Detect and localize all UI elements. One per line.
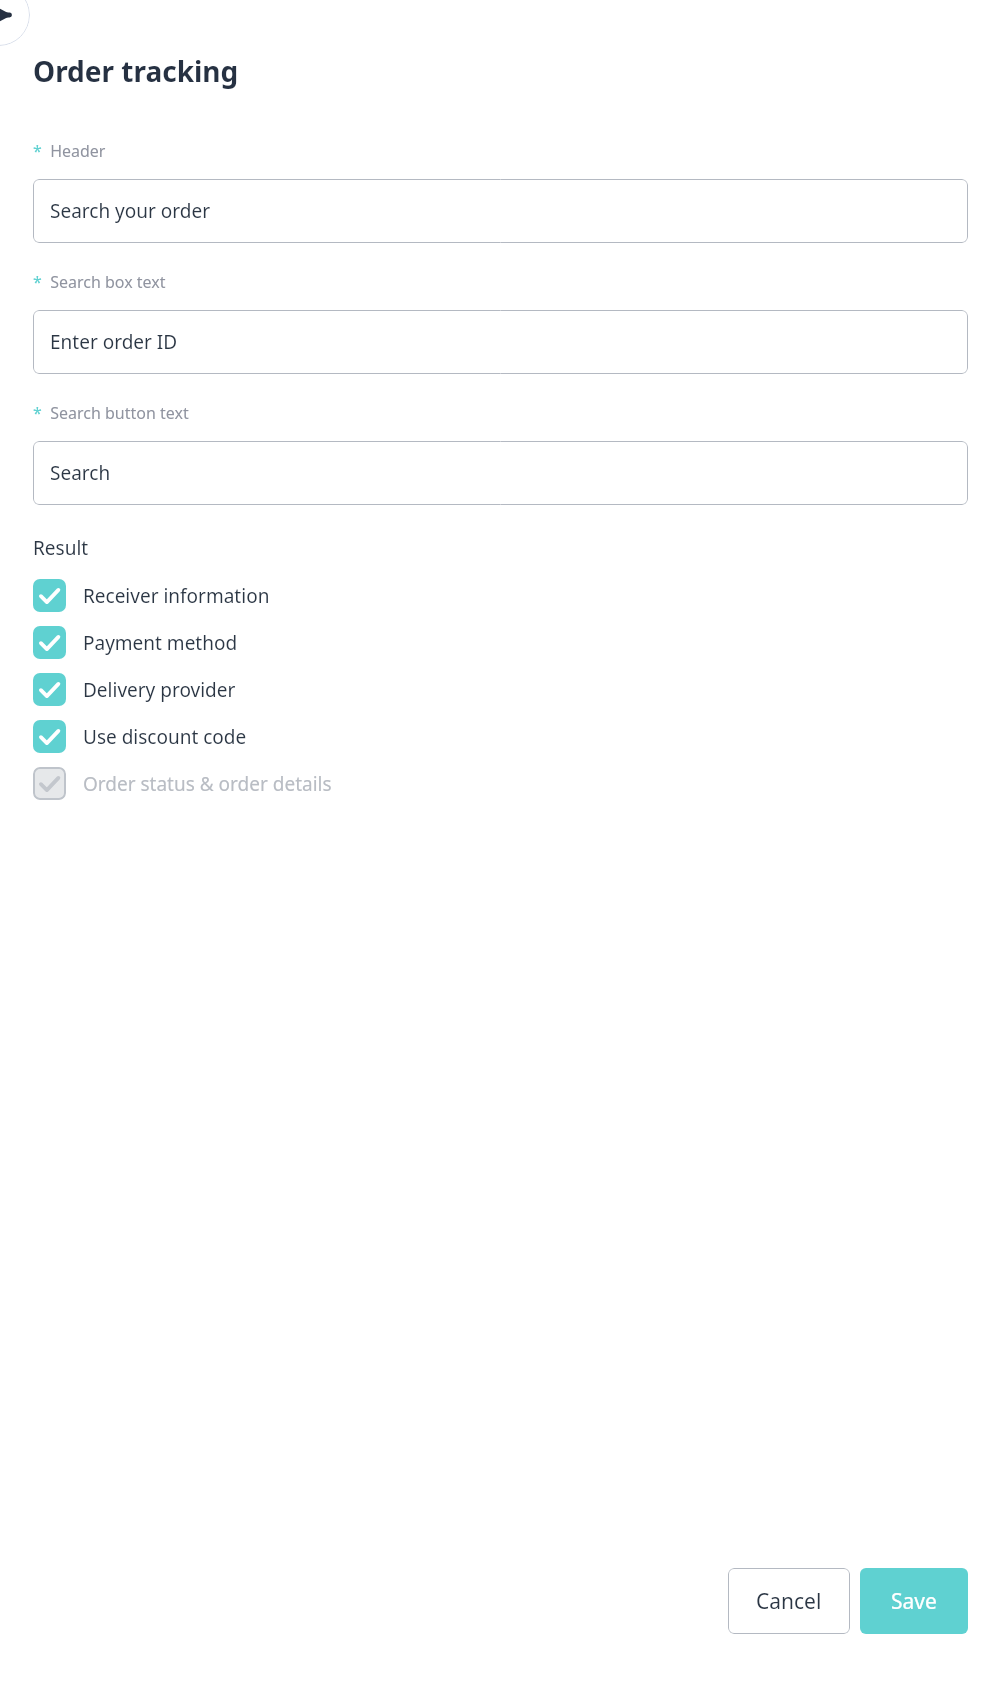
staticText: Save bbox=[891, 1587, 937, 1616]
staticText: Use discount code bbox=[83, 724, 247, 750]
button[interactable]: Expand bbox=[0, 0, 30, 46]
button[interactable]: Save bbox=[860, 1568, 968, 1634]
staticText: * Header bbox=[33, 140, 106, 162]
staticText: Receiver information bbox=[83, 583, 270, 609]
button: Order status & order details bbox=[33, 760, 968, 807]
staticText: Search bbox=[50, 460, 111, 486]
staticText: Order tracking bbox=[33, 52, 239, 90]
staticText: Cancel bbox=[756, 1587, 822, 1616]
staticText: Delivery provider bbox=[83, 677, 236, 703]
button[interactable]: Use discount code bbox=[33, 713, 968, 760]
staticText: Order status & order details bbox=[83, 771, 332, 797]
staticText: * Search box text bbox=[33, 271, 166, 293]
button[interactable]: Delivery provider bbox=[33, 666, 968, 713]
staticText: Enter order ID bbox=[50, 329, 178, 355]
staticText: Result bbox=[33, 535, 89, 561]
button[interactable]: Cancel bbox=[728, 1568, 850, 1634]
button[interactable]: Receiver information bbox=[33, 572, 968, 619]
button[interactable]: Search your order bbox=[33, 179, 968, 243]
button[interactable]: Search bbox=[33, 441, 968, 505]
staticText: Search your order bbox=[50, 198, 210, 224]
button[interactable]: Payment method bbox=[33, 619, 968, 666]
staticText: Payment method bbox=[83, 630, 238, 656]
button[interactable]: Enter order ID bbox=[33, 310, 968, 374]
staticText: * Search button text bbox=[33, 402, 189, 424]
